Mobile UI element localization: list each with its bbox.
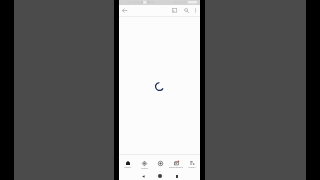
button[interactable]: Shorts — [136, 154, 152, 169]
button[interactable]: More options — [191, 6, 199, 14]
button[interactable]: Back — [139, 172, 147, 180]
button[interactable]: Cast — [170, 6, 179, 15]
button[interactable]: Home — [119, 154, 136, 169]
staticText: Library — [188, 166, 196, 169]
button[interactable]: Search — [182, 6, 191, 15]
button[interactable]: Subscriptions — [168, 154, 184, 169]
button[interactable]: Library — [184, 154, 200, 169]
staticText: Home — [124, 166, 131, 169]
staticText: Shorts — [141, 167, 148, 169]
button[interactable]: Back — [120, 6, 129, 15]
staticText: Subscriptions — [169, 166, 183, 169]
button[interactable]: Create — [152, 154, 168, 169]
button[interactable]: Recents — [173, 172, 181, 180]
button[interactable]: Home — [156, 172, 164, 180]
